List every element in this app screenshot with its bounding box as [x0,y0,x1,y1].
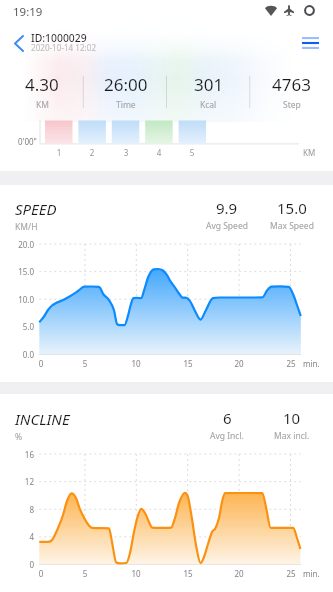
staticText: ID:1000029 [31,31,87,45]
button[interactable]: Menu [291,30,333,56]
button[interactable]: 26:00 [84,70,167,114]
staticText: 20 [229,358,249,369]
staticText: SPEED [15,199,57,219]
staticText: 25 [281,358,301,369]
staticText: 12 [0,476,34,487]
staticText: 1 [49,147,69,158]
staticText: 8 [0,504,34,515]
staticText: Step [283,99,301,111]
staticText: 4.30 [25,73,59,96]
staticText: 15 [178,358,198,369]
staticText: 0'00" [18,136,37,147]
staticText: 0.0 [0,349,34,360]
staticText: Kcal [200,99,217,111]
button[interactable]: 9.9 [196,198,258,232]
staticText: 10 [126,358,146,369]
staticText: KM/H [15,221,38,233]
staticText: 15.0 [0,266,34,277]
staticText: Avg Incl. [210,430,244,442]
button[interactable]: 4.30 [0,70,84,114]
staticText: 3 [116,147,136,158]
staticText: 301 [194,73,224,96]
staticText: 10 [283,408,301,428]
staticText: 5.0 [0,321,34,332]
staticText: 15 [178,568,198,579]
button[interactable]: 4763 [250,70,333,114]
staticText: 19:19 [13,4,43,20]
staticText: 10 [126,568,146,579]
staticText: Max Speed [270,220,314,232]
staticText: Max incl. [274,430,310,442]
staticText: 5 [75,568,95,579]
staticText: 16 [0,449,34,460]
button[interactable]: Back [0,30,32,56]
staticText: 0 [31,568,51,579]
staticText: 4 [0,531,34,542]
staticText: 10.0 [0,294,34,305]
button[interactable]: 6 [196,408,258,442]
staticText: 25 [281,568,301,579]
staticText: Time [116,99,136,111]
staticText: KM [36,99,49,111]
staticText: % [15,431,23,443]
staticText: 15.0 [277,198,307,218]
staticText: 5 [75,358,95,369]
staticText: min. [303,568,320,579]
staticText: KM [303,147,316,158]
staticText: 2 [82,147,102,158]
staticText: 20.0 [0,239,34,250]
staticText: 4763 [272,73,311,96]
staticText: 2020-10-14 12:02 [31,42,97,53]
staticText: INCLINE [15,409,70,429]
button[interactable]: 301 [167,70,250,114]
staticText: 20 [229,568,249,579]
button[interactable]: 10 [261,408,323,442]
button[interactable]: 15.0 [261,198,323,232]
staticText: 0 [31,358,51,369]
staticText: 5 [182,147,202,158]
staticText: Avg Speed [206,220,248,232]
staticText: 4 [149,147,169,158]
staticText: 26:00 [104,73,148,96]
staticText: 9.9 [216,198,238,218]
staticText: 0 [0,559,34,570]
staticText: 6 [223,408,232,428]
staticText: min. [303,358,320,369]
